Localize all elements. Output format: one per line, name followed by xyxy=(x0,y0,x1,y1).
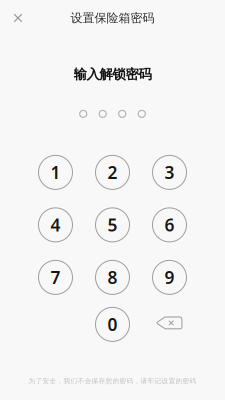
staticText: 4 xyxy=(50,213,60,236)
staticText: 输入解锁密码 xyxy=(73,66,151,82)
button[interactable]: 7 xyxy=(38,260,72,294)
staticText: 5 xyxy=(107,213,117,236)
staticText: 1 xyxy=(50,161,60,184)
staticText: 9 xyxy=(164,266,174,289)
button[interactable]: 2 xyxy=(95,155,129,189)
staticText: 2 xyxy=(107,161,117,184)
button[interactable]: 4 xyxy=(38,208,72,242)
staticText: 0 xyxy=(107,313,117,336)
staticText: 设置保险箱密码 xyxy=(70,11,154,25)
staticText: 为了安全，我们不会保存您的密码，请牢记设置的密码 xyxy=(28,377,196,385)
button[interactable]: 8 xyxy=(95,260,129,294)
staticText: 7 xyxy=(50,266,60,289)
staticText: 8 xyxy=(107,266,117,289)
button[interactable]: Delete xyxy=(152,307,186,341)
button[interactable]: 9 xyxy=(152,260,186,294)
button[interactable]: 3 xyxy=(152,155,186,189)
staticText: 6 xyxy=(164,213,174,236)
button[interactable]: 1 xyxy=(38,155,72,189)
staticText: 3 xyxy=(164,161,174,184)
button[interactable]: Close xyxy=(5,5,31,31)
button[interactable]: 6 xyxy=(152,208,186,242)
button[interactable]: 5 xyxy=(95,208,129,242)
button[interactable]: 0 xyxy=(95,307,129,341)
